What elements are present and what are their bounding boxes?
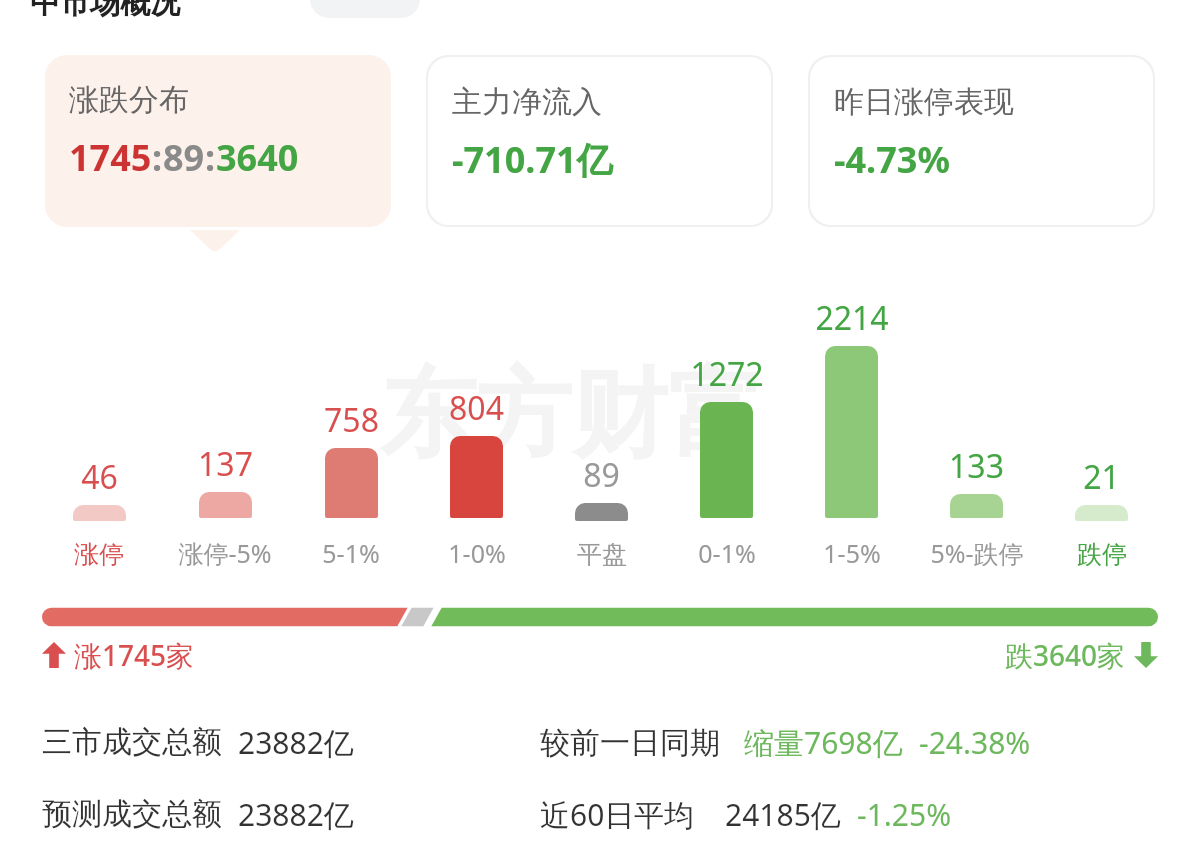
staticText: 0-1% xyxy=(698,536,756,570)
staticText: 24185亿 xyxy=(725,794,841,835)
staticText: 1-5% xyxy=(823,536,881,570)
staticText: 804 xyxy=(449,386,504,430)
staticText: 23882亿 xyxy=(238,722,354,763)
staticText: 89 xyxy=(163,133,205,182)
staticText: 跌停 xyxy=(1077,539,1127,570)
staticText: 中市场概况 xyxy=(30,0,180,22)
staticText: 758 xyxy=(324,398,379,442)
staticText: 平盘 xyxy=(577,539,627,570)
staticText: 1-0% xyxy=(448,536,506,570)
staticText: 21 xyxy=(1083,455,1120,499)
button[interactable]: 主力净流入 xyxy=(428,57,771,225)
staticText: 1745 xyxy=(69,133,152,182)
staticText: -710.71亿 xyxy=(452,135,613,184)
staticText: 5-1% xyxy=(322,536,380,570)
staticText: -1.25% xyxy=(857,794,952,835)
button[interactable]: 46 xyxy=(36,280,162,580)
staticText: 三市成交总额 xyxy=(42,723,222,761)
staticText: 133 xyxy=(949,444,1004,488)
button[interactable] xyxy=(42,604,1158,630)
staticText: 137 xyxy=(198,442,253,486)
staticText: 3640 xyxy=(216,133,299,182)
staticText: 5%-跌停 xyxy=(930,536,1024,570)
staticText: 涨1745家 xyxy=(74,636,195,674)
staticText: 涨停 xyxy=(74,539,124,570)
staticText: 涨跌分布 xyxy=(69,81,189,119)
staticText: : xyxy=(152,133,163,182)
staticText: 23882亿 xyxy=(238,794,354,835)
staticText: -24.38% xyxy=(919,722,1031,763)
staticText: : xyxy=(205,133,216,182)
staticText: 涨停-5% xyxy=(178,536,272,570)
button[interactable]: 2214 xyxy=(789,280,914,580)
staticText: -4.73% xyxy=(834,135,950,184)
staticText: 46 xyxy=(81,455,118,499)
staticText: 较前一日同期 xyxy=(540,724,720,762)
button[interactable]: 涨1745家 xyxy=(42,636,195,674)
button[interactable]: 预测成交总额 xyxy=(0,778,1200,850)
button[interactable]: 21 xyxy=(1039,280,1164,580)
button[interactable]: 133 xyxy=(914,280,1039,580)
staticText: 缩量7698亿 xyxy=(744,722,903,763)
button[interactable]: 中市场概况 xyxy=(30,0,180,22)
staticText: 1272 xyxy=(690,352,764,396)
button[interactable]: 1272 xyxy=(664,280,789,580)
staticText: 2214 xyxy=(815,296,889,340)
button[interactable]: 137 xyxy=(162,280,288,580)
staticText: 89 xyxy=(583,453,620,497)
staticText: 预测成交总额 xyxy=(42,795,222,833)
staticText: 东方财富 xyxy=(380,355,764,476)
button[interactable]: 758 xyxy=(288,280,414,580)
staticText: 跌3640家 xyxy=(1005,636,1126,674)
staticText: 昨日涨停表现 xyxy=(834,83,1014,121)
button[interactable]: 昨日涨停表现 xyxy=(810,57,1153,225)
button[interactable]: 804 xyxy=(414,280,539,580)
button[interactable]: 涨跌分布 xyxy=(45,55,391,227)
staticText: 近60日平均 xyxy=(540,794,695,835)
button[interactable] xyxy=(310,0,420,18)
staticText: 主力净流入 xyxy=(452,83,602,121)
button[interactable]: 跌3640家 xyxy=(1005,636,1158,674)
button[interactable]: 89 xyxy=(539,280,664,580)
button[interactable]: 三市成交总额 xyxy=(0,706,1200,778)
